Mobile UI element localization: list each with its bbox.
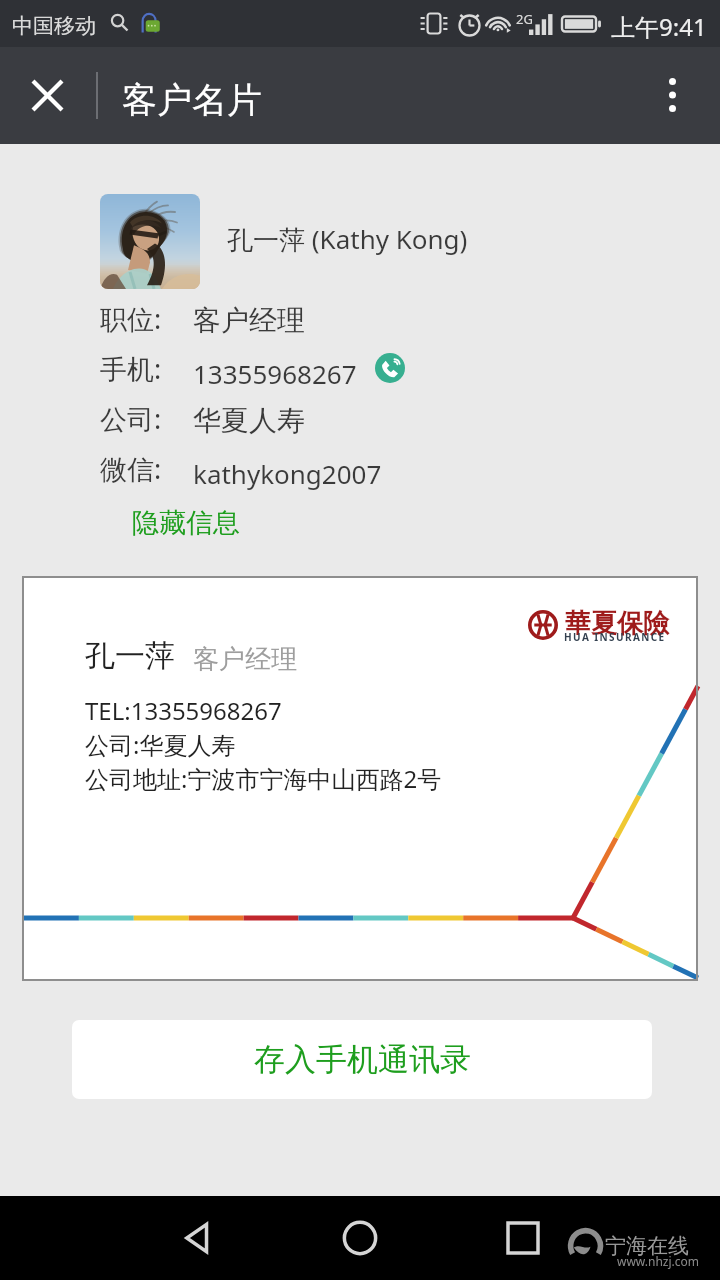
staticText: TEL:13355968267 [85, 694, 282, 727]
staticText: www.nhzj.com [617, 1253, 700, 1269]
staticText: 客户经理 [193, 303, 305, 338]
button[interactable]: 隐藏信息 [126, 500, 246, 546]
button[interactable]: Home [318, 1196, 402, 1280]
button[interactable]: Back [155, 1196, 239, 1280]
staticText: 13355968267 [193, 356, 357, 391]
staticText: 公司地址:宁波市宁海中山西路2号 [85, 762, 442, 795]
button[interactable]: More options [630, 47, 720, 144]
staticText: 公司: [100, 400, 162, 437]
staticText: 宁海在线 [605, 1233, 689, 1259]
button[interactable]: Close [0, 47, 96, 144]
staticText: 手机: [100, 350, 162, 387]
button[interactable]: 孔一萍 [22, 576, 698, 981]
staticText: 微信: [100, 450, 162, 487]
staticText: 隐藏信息 [132, 506, 240, 540]
staticText: 2G [516, 10, 533, 28]
staticText: 中国移动 [12, 13, 96, 39]
staticText: 孔一萍 (Kathy Kong) [227, 221, 468, 257]
staticText: 职位: [100, 300, 162, 337]
staticText: 客户经理 [193, 643, 297, 676]
staticText: 公司:华夏人寿 [85, 728, 236, 761]
button[interactable]: Call 13355968267 [375, 353, 405, 383]
staticText: 上午9:41 [611, 10, 707, 43]
button[interactable]: 存入手机通讯录 [72, 1020, 652, 1099]
staticText: 客户名片 [122, 78, 262, 122]
button[interactable]: Recent apps [481, 1196, 565, 1280]
staticText: 孔一萍 [85, 637, 175, 675]
staticText: kathykong2007 [193, 456, 382, 491]
staticText: 存入手机通讯录 [254, 1040, 471, 1079]
staticText: 華夏保險 [565, 607, 669, 640]
staticText: HUA INSURANCE [564, 630, 666, 644]
staticText: 华夏人寿 [193, 403, 305, 438]
